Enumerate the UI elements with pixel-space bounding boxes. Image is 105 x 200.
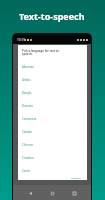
staticText: Catalan — [22, 130, 33, 134]
staticText: 10:19 — [17, 38, 26, 42]
button[interactable]: Back — [25, 188, 35, 198]
button[interactable]: Recents — [69, 188, 79, 198]
button[interactable]: Croatian — [18, 151, 87, 164]
button[interactable]: Catalan — [18, 125, 87, 138]
staticText: Arabic — [22, 78, 31, 82]
button[interactable]: Home — [47, 188, 57, 198]
button[interactable]: Bangla — [18, 86, 87, 99]
staticText: Text-to-speech — [19, 10, 85, 22]
button[interactable]: CANCEL — [69, 177, 84, 180]
staticText: speech. — [22, 52, 33, 56]
staticText: Bangla — [22, 91, 32, 95]
button[interactable]: Cantonese — [18, 112, 87, 125]
staticText: Czech — [22, 169, 30, 173]
button[interactable]: Albanian — [18, 60, 87, 73]
staticText: Croatian — [22, 156, 34, 160]
button[interactable]: Chinese — [18, 138, 87, 151]
staticText: Albanian — [22, 65, 34, 69]
staticText: Bosnian — [22, 104, 33, 108]
button[interactable]: Arabic — [18, 73, 87, 86]
staticText: Chinese — [22, 143, 33, 147]
staticText: Cantonese — [22, 117, 37, 121]
staticText: CANCEL — [71, 178, 82, 179]
button[interactable]: Czech — [18, 164, 87, 177]
button[interactable]: Bosnian — [18, 99, 87, 112]
staticText: Pick a language for text to — [22, 49, 59, 53]
